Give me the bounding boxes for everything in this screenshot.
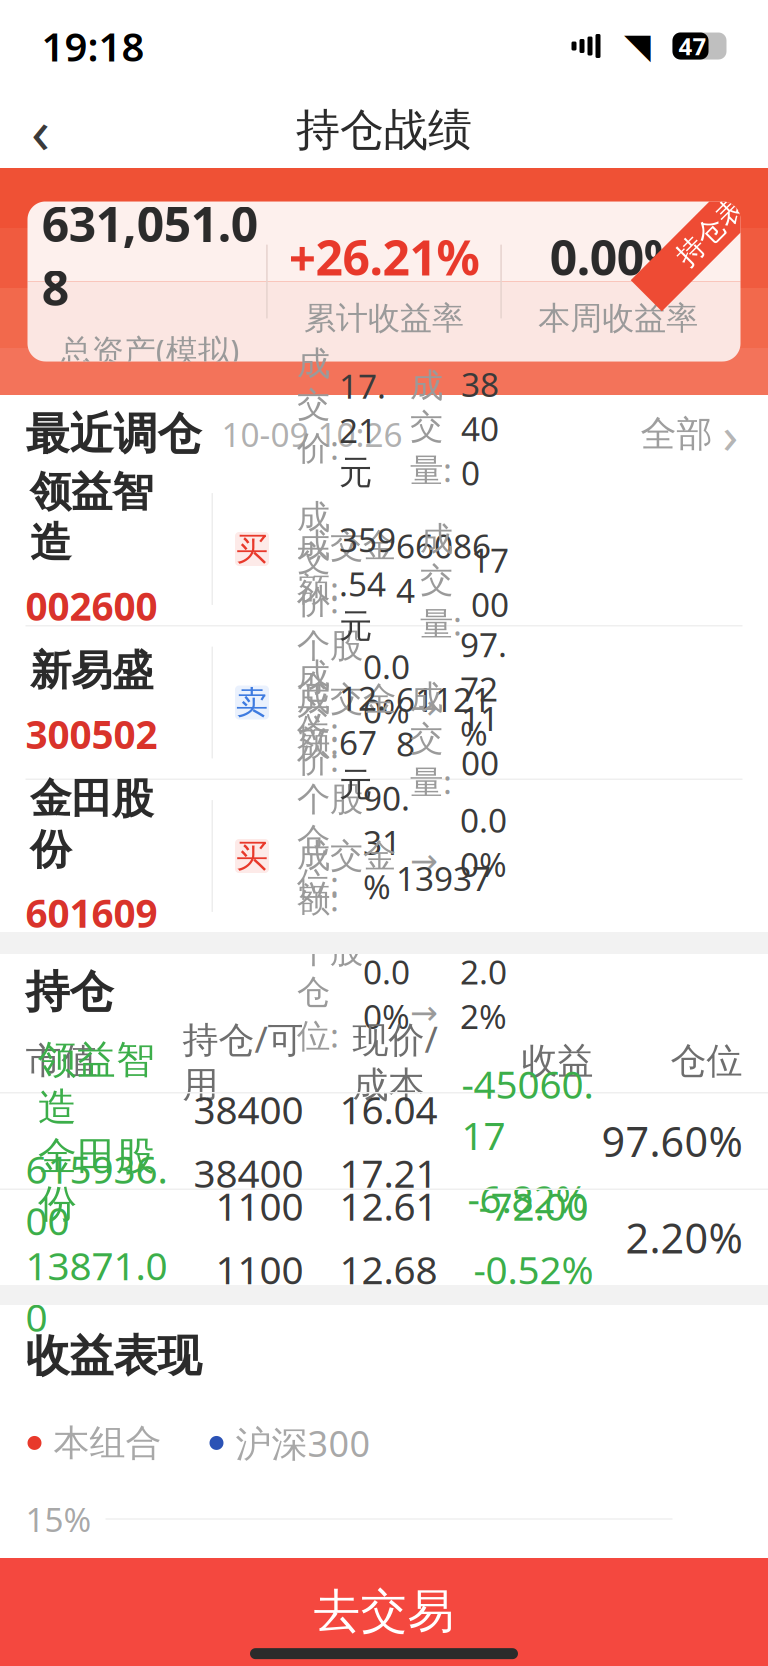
staticText: → [410, 804, 460, 880]
staticText: 市值 [25, 1039, 97, 1083]
staticText: 买 [236, 836, 268, 876]
staticText: 沪深300 [235, 1419, 370, 1467]
staticText: 13937 [396, 856, 491, 900]
staticText: 2.02% [460, 949, 507, 1038]
staticText: ◥ [624, 26, 651, 66]
staticText: -0.52% [473, 1243, 593, 1295]
button[interactable]: 返回 [3, 93, 77, 167]
staticText: 615936.00 [25, 1143, 167, 1246]
staticText: 成交价: [297, 497, 339, 667]
staticText: 1700 [471, 538, 509, 626]
staticText: 持仓表现 [664, 204, 768, 239]
staticText: 成交量: [410, 677, 461, 803]
staticText: 成交量: [420, 519, 471, 645]
staticText: 持仓 [25, 965, 113, 1019]
button[interactable]: 新易盛 [0, 626, 768, 778]
staticText: 38400 [461, 362, 499, 495]
staticText: 38400 [193, 1147, 303, 1198]
staticText: 本组合 [53, 1421, 161, 1465]
button[interactable]: 金田股份 [0, 1190, 768, 1285]
staticText: 002600 [25, 580, 157, 631]
staticText: → [410, 651, 460, 726]
staticText: 15% [25, 1497, 91, 1541]
staticText: 2.20% [625, 1210, 742, 1265]
staticText: 本周收益率 [538, 299, 698, 338]
staticText: 新易盛 [30, 645, 153, 696]
staticText: 累计收益率 [304, 299, 464, 338]
staticText: 0.00% [363, 949, 410, 1038]
staticText: 47 [678, 30, 706, 62]
staticText: -45060.17 [461, 1058, 593, 1161]
staticText: 成交量: [410, 365, 461, 491]
staticText: 97.72% [460, 622, 507, 755]
staticText: 19:18 [41, 19, 144, 72]
staticText: 17.21 [339, 1147, 437, 1198]
staticText: 97.60% [601, 1114, 742, 1168]
staticText: 个股仓位: [297, 931, 363, 1057]
staticText: +26.21% [288, 225, 479, 289]
staticText: 12.61 [339, 1180, 437, 1231]
staticText: -72.00 [478, 1180, 588, 1231]
staticText: 631,051.08 [42, 191, 258, 319]
staticText: 成交金额: [297, 835, 396, 921]
staticText: 1100 [215, 1243, 303, 1295]
staticText: 12.68 [339, 1243, 437, 1295]
staticText: 359.54元 [339, 517, 396, 647]
staticText: 金田股份 [38, 1133, 155, 1228]
staticText: -6.82% [467, 1173, 587, 1224]
staticText: ‹ [31, 89, 50, 171]
staticText: 个股仓位: [297, 779, 363, 905]
staticText: 13871.00 [25, 1240, 167, 1342]
staticText: 0.00% [363, 644, 410, 733]
staticText: 全部 [640, 412, 712, 456]
staticText: 买 [236, 529, 268, 569]
staticText: 仓位 [670, 1039, 742, 1083]
staticText: 最近调仓 [25, 407, 201, 461]
staticText: 300502 [25, 708, 157, 759]
button[interactable]: 领益智造 [0, 1093, 768, 1188]
staticText: 1100 [215, 1180, 303, 1231]
staticText: 现价/成本 [352, 1015, 437, 1107]
staticText: 16.04 [339, 1084, 437, 1135]
staticText: 660864 [396, 523, 491, 612]
staticText: 0.00% [460, 798, 507, 886]
staticText: 601609 [25, 887, 157, 938]
button[interactable]: 去交易 [0, 1558, 768, 1666]
button[interactable]: 全部 [636, 392, 742, 476]
staticText: 成交价: [297, 655, 339, 825]
staticText: 领益智造 [38, 1036, 155, 1131]
staticText: 领益智造 [30, 467, 153, 568]
staticText: 611218 [396, 677, 491, 765]
staticText: 总资产(模拟) [60, 329, 240, 371]
staticText: 成交金额: [297, 679, 396, 764]
staticText: 12.67元 [339, 676, 386, 805]
staticText: 成交价: [297, 343, 339, 513]
button[interactable]: 金田股份 [0, 780, 768, 932]
staticText: 90.31% [363, 776, 410, 908]
staticText: 1100 [461, 696, 499, 785]
staticText: → [410, 956, 460, 1032]
staticText: 持仓战绩 [296, 103, 472, 157]
staticText: 收益表现 [25, 1329, 201, 1383]
staticText: 卖 [236, 683, 268, 722]
staticText: 38400 [193, 1084, 303, 1135]
staticText: 0.00% [550, 225, 687, 289]
staticText: 成交金额: [297, 525, 396, 610]
staticText: 17.21元 [339, 364, 386, 493]
staticText: › [722, 400, 738, 468]
staticText: 个股仓位: [297, 625, 363, 751]
button[interactable]: 领益智造 [0, 473, 768, 625]
staticText: 10-09 10:26 [221, 412, 402, 456]
staticText: 持仓/可用 [182, 1015, 303, 1107]
staticText: 金田股份 [30, 774, 153, 875]
staticText: 收益 [521, 1039, 593, 1083]
staticText: 去交易 [313, 1583, 454, 1640]
